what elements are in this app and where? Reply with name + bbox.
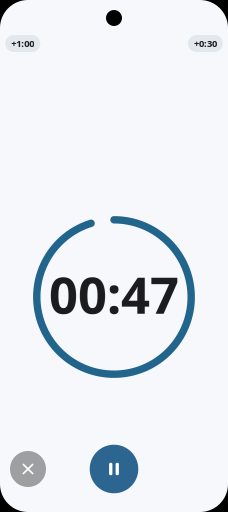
button[interactable]: +1:00: [5, 35, 40, 52]
button[interactable]: Cancel timer: [10, 451, 46, 487]
staticText: +0:30: [194, 37, 217, 50]
staticText: 00:47: [49, 260, 179, 328]
button[interactable]: +0:30: [188, 35, 223, 52]
staticText: +1:00: [11, 37, 34, 50]
button[interactable]: Pause timer: [90, 445, 138, 493]
